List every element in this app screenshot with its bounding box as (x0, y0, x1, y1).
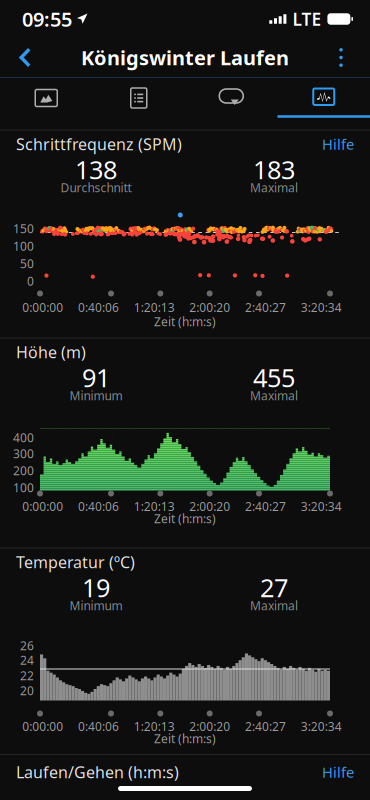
staticText: 2:40:27 (245, 718, 286, 734)
button[interactable]: More options (320, 38, 370, 76)
staticText: 3:20:34 (301, 299, 342, 315)
staticText: 09:55 (22, 6, 72, 32)
staticText: 22 (20, 667, 34, 683)
staticText: Hilfe (322, 134, 354, 154)
staticText: Minimum (69, 387, 122, 403)
staticText: Temperatur (ºC) (16, 551, 135, 573)
staticText: 300 (13, 445, 34, 461)
staticText: 1:20:13 (134, 498, 175, 514)
staticText: 0:40:06 (78, 718, 119, 734)
staticText: 200 (13, 462, 34, 478)
staticText: 91 (82, 361, 110, 394)
staticText: 50 (20, 255, 34, 271)
staticText: Königswinter Laufen (81, 44, 289, 71)
staticText: 3:20:34 (301, 718, 342, 734)
staticText: Minimum (69, 597, 122, 613)
staticText: Zeit (h:m:s) (154, 510, 216, 526)
staticText: 1:20:13 (134, 299, 175, 315)
button[interactable]: Details (92, 78, 185, 118)
staticText: 3:20:34 (301, 498, 342, 514)
staticText: 183 (253, 153, 295, 186)
staticText: 455 (253, 361, 295, 394)
staticText: 27 (260, 571, 288, 604)
staticText: 400 (13, 429, 34, 445)
staticText: 100 (13, 479, 34, 495)
button[interactable]: Back (0, 39, 47, 76)
button[interactable]: Map (0, 78, 92, 118)
staticText: Maximal (250, 387, 298, 403)
staticText: 0:00:00 (22, 498, 63, 514)
staticText: Höhe (m) (16, 341, 86, 363)
staticText: LTE (292, 7, 321, 30)
staticText: 2:40:27 (245, 498, 286, 514)
staticText: 0 (27, 273, 34, 289)
staticText: 24 (20, 652, 34, 668)
button[interactable]: Hilfe (322, 765, 354, 779)
staticText: Zeit (h:m:s) (154, 730, 216, 746)
staticText: 2:40:27 (245, 299, 286, 315)
button[interactable]: Hilfe (322, 137, 354, 151)
staticText: 2:00:20 (189, 498, 230, 514)
staticText: Zeit (h:m:s) (154, 313, 216, 329)
staticText: Hilfe (322, 762, 354, 782)
button[interactable]: Laps (185, 78, 277, 118)
button[interactable]: Charts (277, 78, 370, 118)
staticText: 0:00:00 (22, 718, 63, 734)
staticText: 2:00:20 (189, 299, 230, 315)
staticText: Durchschnitt (60, 179, 131, 195)
staticText: 2:00:20 (189, 718, 230, 734)
staticText: 100 (13, 238, 34, 254)
staticText: Maximal (250, 179, 298, 195)
staticText: 26 (20, 637, 34, 653)
staticText: 20 (20, 682, 34, 698)
staticText: 19 (82, 571, 110, 604)
staticText: 138 (75, 153, 117, 186)
staticText: 0:40:06 (78, 498, 119, 514)
staticText: Laufen/Gehen (h:m:s) (16, 761, 179, 783)
staticText: Maximal (250, 597, 298, 613)
staticText: 1:20:13 (134, 718, 175, 734)
staticText: 0:40:06 (78, 299, 119, 315)
staticText: Schrittfrequenz (SPM) (16, 133, 182, 155)
staticText: 0:00:00 (22, 299, 63, 315)
staticText: 150 (13, 220, 34, 236)
